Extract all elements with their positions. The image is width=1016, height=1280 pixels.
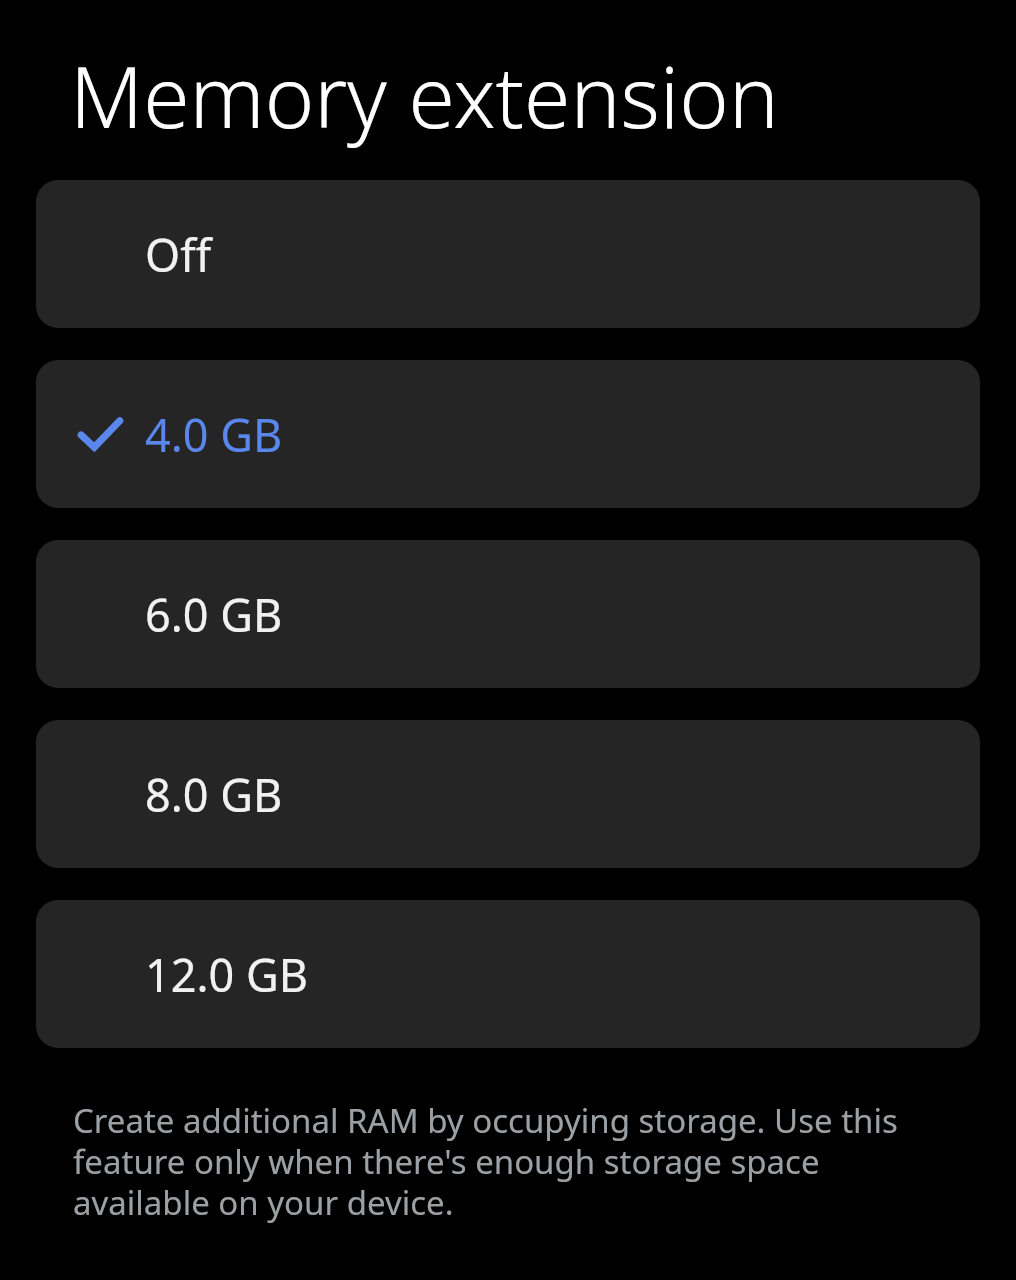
staticText: 12.0 GB xyxy=(145,944,308,1005)
staticText: Memory extension xyxy=(70,38,779,152)
staticText: 4.0 GB xyxy=(145,404,283,465)
staticText: Off xyxy=(145,224,212,285)
staticText: Create additional RAM by occupying stora… xyxy=(73,1098,944,1225)
button[interactable]: 6.0 GB xyxy=(36,540,980,688)
staticText: 8.0 GB xyxy=(145,764,283,825)
button[interactable]: 12.0 GB xyxy=(36,900,980,1048)
staticText: 6.0 GB xyxy=(145,584,283,645)
button[interactable]: 8.0 GB xyxy=(36,720,980,868)
button[interactable]: Off xyxy=(36,180,980,328)
button[interactable]: 4.0 GB xyxy=(36,360,980,508)
